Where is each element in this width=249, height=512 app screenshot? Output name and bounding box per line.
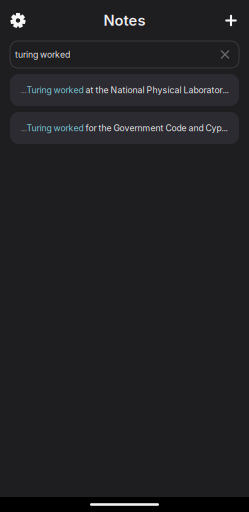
button[interactable]: New Note (213, 0, 249, 41)
button[interactable]: Settings (0, 0, 36, 41)
staticText: Notes (103, 12, 145, 29)
staticText: ... (20, 123, 26, 133)
staticText: turing worked (15, 49, 70, 60)
button[interactable]: ... (10, 74, 239, 106)
staticText: ... (20, 85, 26, 95)
staticText: Turing worked (26, 85, 83, 95)
button[interactable]: Clear search (215, 41, 235, 67)
button[interactable]: ... (10, 112, 239, 144)
staticText: for the Government Code and Cyp... (83, 123, 227, 133)
staticText: at the National Physical Laborator... (83, 85, 228, 95)
staticText: Turing worked (26, 123, 83, 133)
